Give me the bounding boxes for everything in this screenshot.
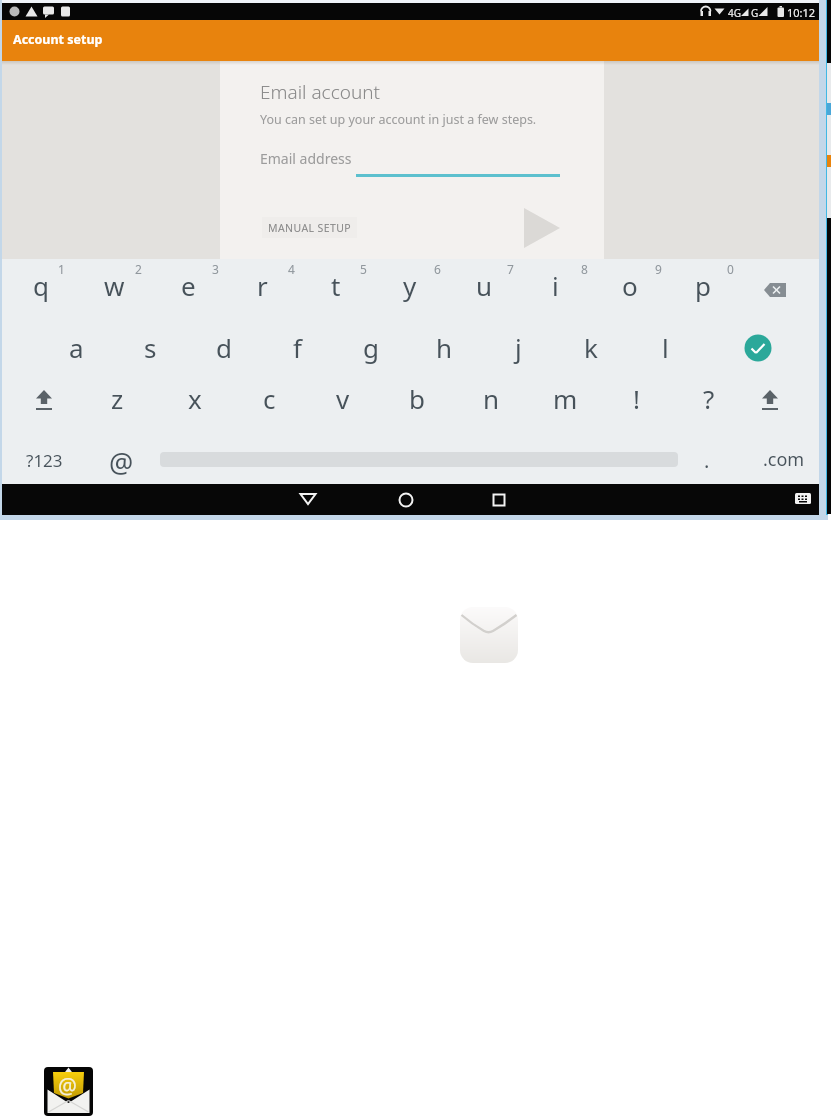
staticText: You can set up your account in just a fe…: [260, 111, 537, 128]
button[interactable]: .com: [752, 436, 816, 482]
staticText: u: [476, 268, 493, 303]
button[interactable]: b: [385, 375, 449, 421]
staticText: q: [33, 268, 49, 303]
staticText: h: [436, 330, 453, 365]
button[interactable]: o: [598, 262, 662, 308]
staticText: v: [336, 381, 350, 416]
button[interactable]: g: [339, 324, 403, 370]
staticText: t: [331, 268, 341, 303]
staticText: 0: [727, 261, 734, 277]
staticText: .: [704, 447, 710, 474]
staticText: ?: [703, 381, 715, 416]
staticText: Email account: [260, 79, 380, 105]
staticText: Email address: [260, 149, 352, 168]
staticText: 3: [212, 261, 219, 277]
button[interactable]: a: [44, 324, 108, 370]
button[interactable]: h: [412, 324, 476, 370]
staticText: x: [188, 381, 202, 416]
button[interactable]: [44, 1067, 94, 1116]
staticText: m: [553, 381, 578, 416]
staticText: a: [69, 330, 84, 365]
staticText: G: [751, 6, 759, 20]
staticText: w: [104, 268, 125, 303]
staticText: e: [181, 268, 196, 303]
staticText: 7: [507, 261, 514, 277]
button[interactable]: w: [82, 262, 146, 308]
staticText: n: [483, 381, 500, 416]
button[interactable]: j: [486, 324, 550, 370]
button[interactable]: l: [633, 324, 697, 370]
staticText: g: [363, 330, 379, 365]
staticText: 10:12: [787, 5, 816, 20]
button[interactable]: [2, 20, 819, 61]
staticText: 8: [581, 261, 588, 277]
staticText: j: [515, 330, 522, 365]
button[interactable]: r: [230, 262, 294, 308]
staticText: @: [58, 1072, 77, 1101]
staticText: r: [257, 268, 268, 303]
button[interactable]: z: [85, 375, 149, 421]
button[interactable]: i: [523, 262, 587, 308]
staticText: 4: [288, 261, 295, 277]
staticText: p: [695, 268, 711, 303]
staticText: !: [633, 381, 640, 416]
button[interactable]: e: [156, 262, 220, 308]
staticText: o: [622, 268, 638, 303]
button[interactable]: c: [237, 375, 301, 421]
button[interactable]: v: [311, 375, 375, 421]
staticText: s: [144, 330, 157, 365]
staticText: MANUAL SETUP: [268, 221, 351, 235]
button[interactable]: [522, 207, 562, 249]
button[interactable]: ?: [677, 375, 741, 421]
button[interactable]: d: [192, 324, 256, 370]
staticText: b: [409, 381, 425, 416]
staticText: i: [552, 268, 559, 303]
button[interactable]: m: [533, 375, 597, 421]
button[interactable]: t: [304, 262, 368, 308]
staticText: k: [584, 330, 598, 365]
staticText: z: [111, 381, 124, 416]
button[interactable]: @: [89, 439, 153, 485]
staticText: c: [263, 381, 276, 416]
button[interactable]: !: [604, 375, 668, 421]
button[interactable]: .: [675, 437, 739, 483]
staticText: 4G: [728, 6, 741, 20]
staticText: f: [293, 330, 302, 365]
button[interactable]: q: [9, 262, 73, 308]
staticText: y: [403, 268, 417, 303]
staticText: d: [216, 330, 232, 365]
staticText: 1: [58, 261, 65, 277]
staticText: .com: [763, 447, 805, 472]
button[interactable]: [459, 605, 519, 665]
button[interactable]: f: [265, 324, 329, 370]
staticText: ?123: [26, 449, 63, 472]
staticText: l: [662, 330, 669, 365]
button[interactable]: k: [559, 324, 623, 370]
button[interactable]: x: [163, 375, 227, 421]
staticText: 2: [135, 261, 142, 277]
staticText: 5: [360, 261, 367, 277]
button[interactable]: y: [378, 262, 442, 308]
button[interactable]: u: [452, 262, 516, 308]
button[interactable]: p: [671, 262, 735, 308]
staticText: Account setup: [13, 31, 103, 48]
button[interactable]: s: [118, 324, 182, 370]
staticText: 6: [434, 261, 441, 277]
staticText: 9: [655, 261, 662, 277]
button[interactable]: n: [459, 375, 523, 421]
button[interactable]: MANUAL SETUP: [262, 217, 357, 238]
staticText: @: [109, 444, 134, 481]
button[interactable]: ?123: [12, 437, 76, 483]
